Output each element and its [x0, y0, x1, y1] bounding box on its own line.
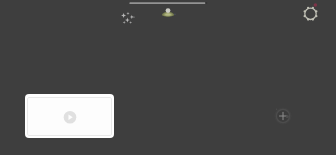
- button[interactable]: [25, 94, 114, 138]
- button[interactable]: Profile: [160, 4, 180, 22]
- button[interactable]: Effects: [119, 9, 139, 29]
- button[interactable]: Add: [271, 104, 295, 128]
- button[interactable]: Settings: [299, 2, 323, 26]
